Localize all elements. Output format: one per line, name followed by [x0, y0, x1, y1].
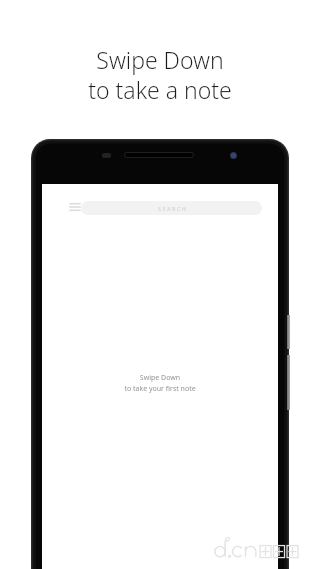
button[interactable]: Open navigation menu: [64, 196, 86, 218]
staticText: Swipe Down to take your first note: [124, 373, 196, 393]
button[interactable]: Volume button: [287, 355, 290, 410]
staticText: S E A R C H: [158, 205, 186, 212]
staticText: Swipe Down to take a note: [0, 44, 320, 569]
button[interactable]: S E A R C H: [81, 201, 262, 215]
button[interactable]: Power button: [287, 315, 290, 349]
